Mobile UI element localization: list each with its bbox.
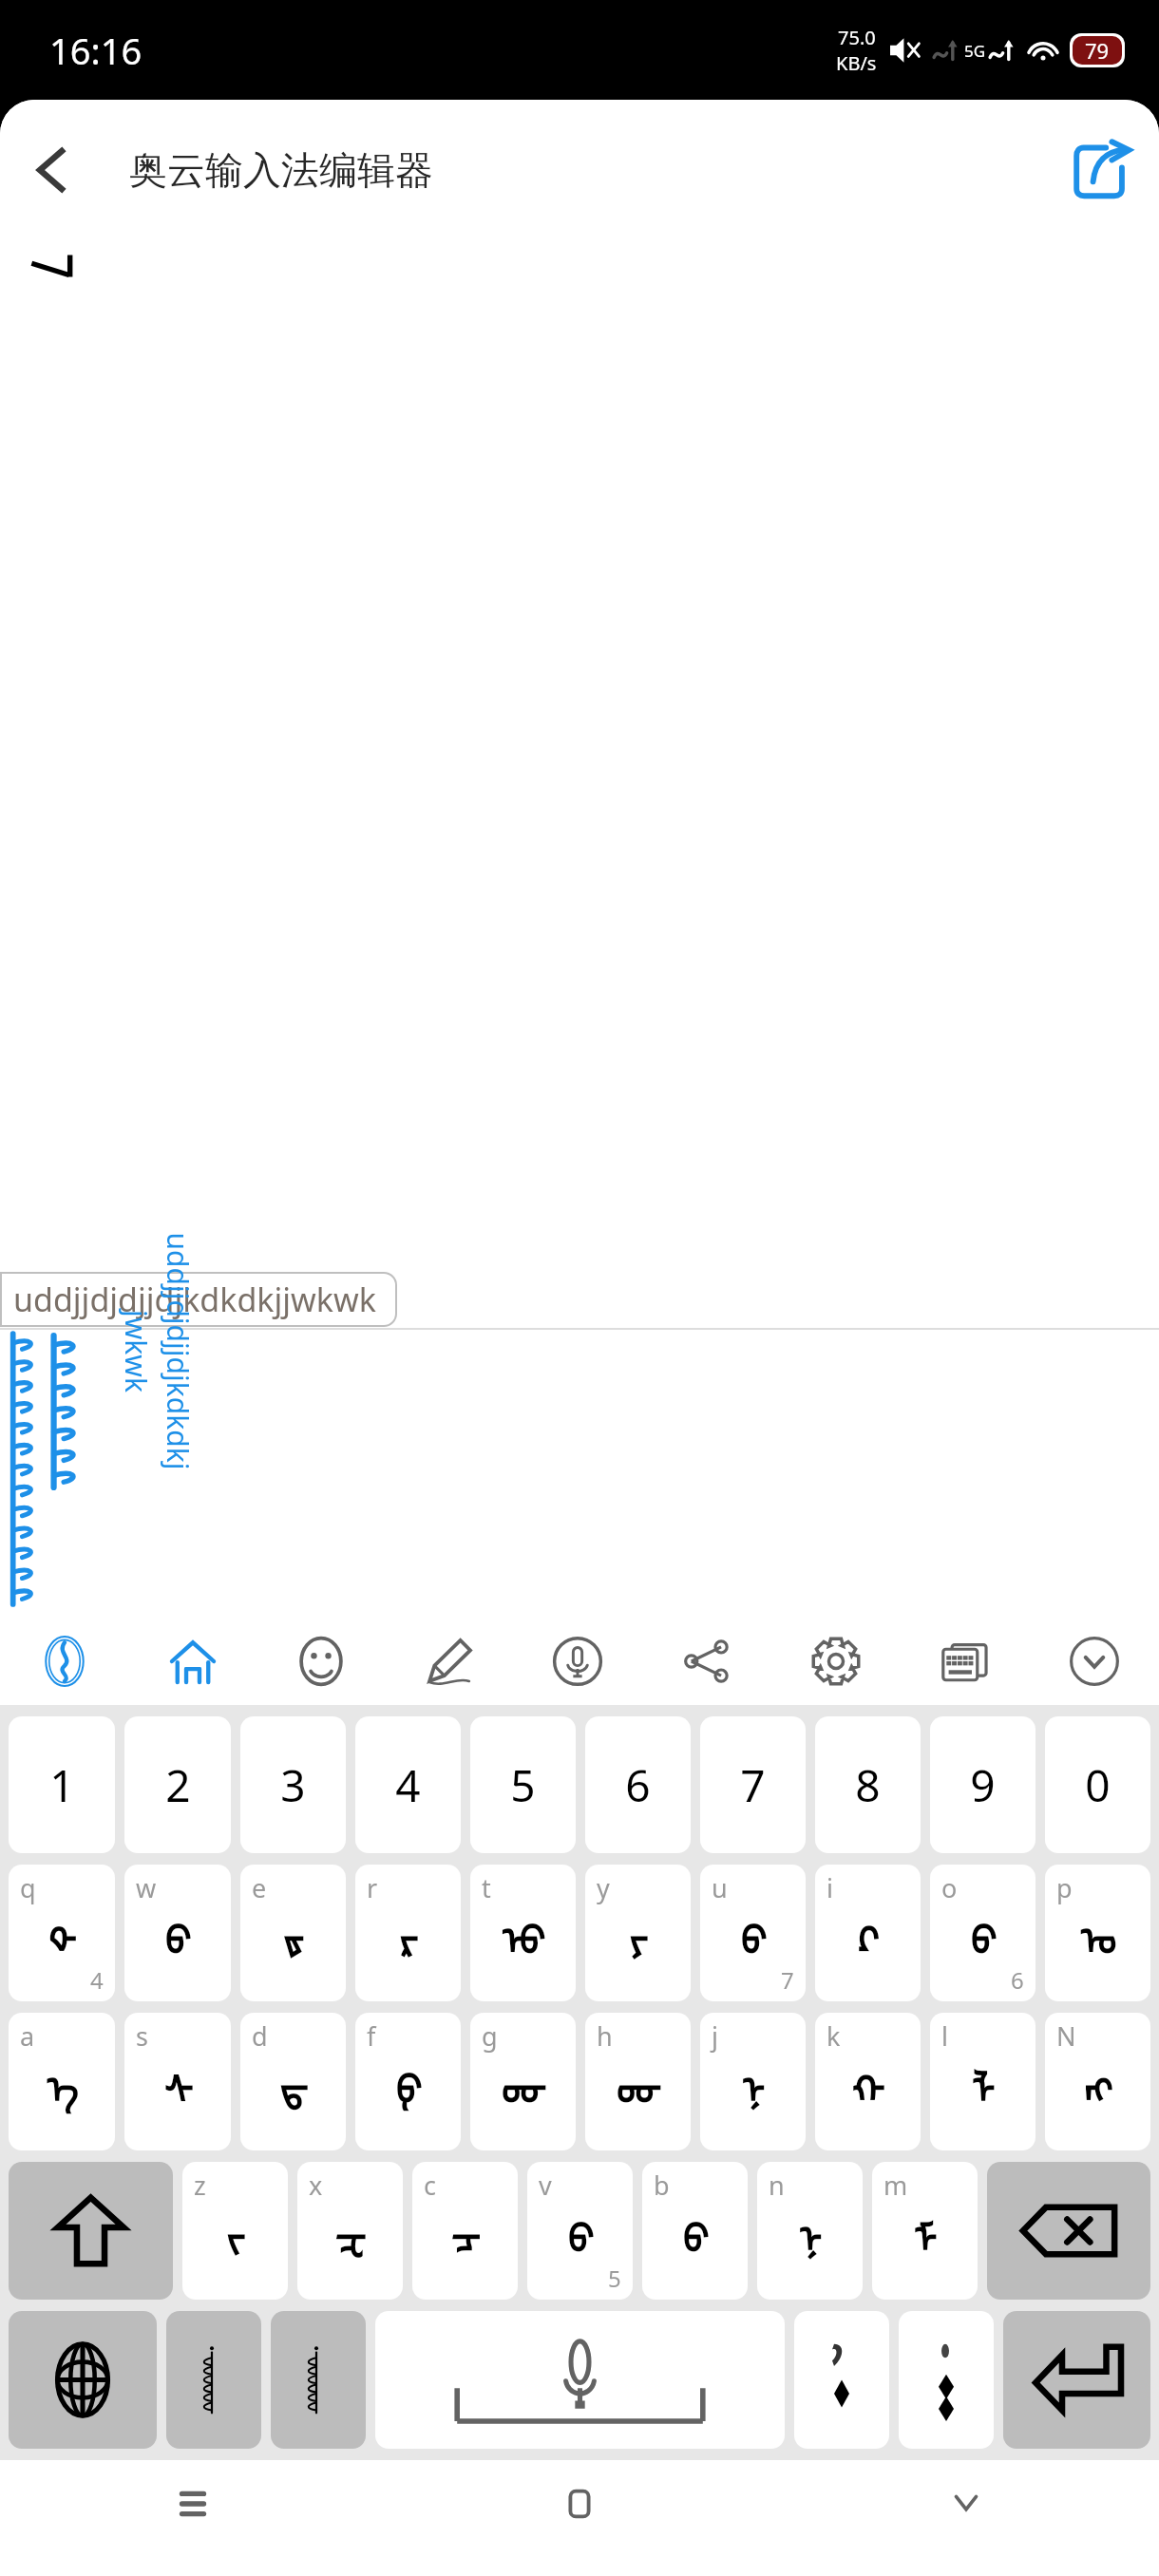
button[interactable]: ᡂ bbox=[470, 2013, 576, 2150]
staticText: w bbox=[136, 1870, 157, 1905]
button[interactable]: ᠳ bbox=[240, 2013, 346, 2150]
staticText: k bbox=[826, 2018, 841, 2054]
staticText: b bbox=[654, 2168, 670, 2203]
button[interactable]: 5 bbox=[470, 1716, 576, 1853]
button[interactable]: Settings bbox=[771, 1618, 901, 1705]
button[interactable]: 9 bbox=[930, 1716, 1035, 1853]
button[interactable]: ᠶ bbox=[585, 1865, 691, 2001]
staticText: 6 bbox=[1011, 1964, 1024, 1996]
staticText: 6 bbox=[625, 1755, 651, 1815]
button[interactable]: Shift bbox=[9, 2162, 173, 2300]
staticText: i bbox=[826, 1870, 833, 1905]
staticText: s bbox=[136, 2018, 148, 2054]
button[interactable]: Switch language bbox=[9, 2311, 157, 2449]
staticText: ᡑ bbox=[282, 1900, 304, 1966]
button[interactable]: Back bbox=[772, 2460, 1159, 2576]
button[interactable]: ᡂ bbox=[585, 2013, 691, 2150]
button[interactable]: Mongolian symbols bbox=[271, 2311, 366, 2449]
staticText: 9 bbox=[970, 1755, 996, 1815]
button[interactable]: Recent apps bbox=[0, 2460, 386, 2576]
staticText: c bbox=[424, 2168, 436, 2203]
button[interactable]: Emoji bbox=[256, 1618, 385, 1705]
staticText: ᠨ bbox=[798, 2198, 822, 2264]
button[interactable]: ᠵ bbox=[182, 2162, 288, 2300]
staticText: 0 bbox=[1085, 1755, 1111, 1815]
staticText: h bbox=[597, 2018, 613, 2054]
button[interactable]: ᡋ bbox=[124, 1865, 231, 2001]
staticText: ᠵ bbox=[226, 2198, 245, 2264]
button[interactable]: ᡋ bbox=[700, 1865, 806, 2001]
staticText: q bbox=[20, 1870, 36, 1905]
staticText: ᠯ bbox=[971, 2049, 995, 2115]
button[interactable]: Space bbox=[375, 2311, 785, 2449]
staticText: ᠨ bbox=[741, 2049, 765, 2115]
button[interactable]: ᠮ bbox=[872, 2162, 978, 2300]
button[interactable]: ᠯ bbox=[930, 2013, 1035, 2150]
staticText: ᡗ bbox=[857, 1900, 879, 1966]
staticText: v bbox=[539, 2168, 552, 2203]
button[interactable]: uddjjdjdjjdjkdkdkj bbox=[59, 1332, 296, 1371]
staticText: 4 bbox=[395, 1755, 421, 1815]
staticText: ᡋ bbox=[740, 1900, 767, 1966]
button[interactable]: Mongolian symbols bbox=[166, 2311, 261, 2449]
button[interactable]: Comma bbox=[794, 2311, 889, 2449]
staticText: a bbox=[20, 2018, 35, 2054]
button[interactable]: Home bbox=[386, 2460, 772, 2576]
staticText: 7 bbox=[740, 1755, 766, 1815]
button[interactable]: ᠨ bbox=[700, 2013, 806, 2150]
button[interactable]: Enter bbox=[1003, 2311, 1150, 2449]
button[interactable]: ᡋ bbox=[527, 2162, 633, 2300]
button[interactable]: Period bbox=[899, 2311, 994, 2449]
button[interactable]: ᡉ bbox=[470, 1865, 576, 2001]
button[interactable]: Switch keyboard bbox=[901, 1618, 1030, 1705]
staticText: 79 bbox=[1085, 36, 1110, 65]
button[interactable]: 1 bbox=[9, 1716, 115, 1853]
button[interactable]: 3 bbox=[240, 1716, 346, 1853]
button[interactable]: Home bbox=[128, 1618, 256, 1705]
button[interactable]: ᡐ bbox=[9, 1865, 115, 2001]
button[interactable]: ᠷ bbox=[355, 1865, 461, 2001]
button[interactable]: 2 bbox=[124, 1716, 231, 1853]
button[interactable]: Voice input bbox=[513, 1618, 642, 1705]
button[interactable]: ᡑ bbox=[240, 1865, 346, 2001]
button[interactable]: ᠤ bbox=[1045, 1865, 1150, 2001]
staticText: x bbox=[309, 2168, 323, 2203]
button[interactable]: ᠡ bbox=[9, 2013, 115, 2150]
staticText: ᠮ bbox=[913, 2198, 937, 2264]
staticText: f bbox=[367, 2018, 376, 2054]
button[interactable]: ᠴ bbox=[412, 2162, 518, 2300]
button[interactable]: Share bbox=[642, 1618, 771, 1705]
button[interactable]: uddjjdjdjjdjkdkdkjjwkwk bbox=[0, 1272, 397, 1327]
button[interactable]: Handwriting bbox=[385, 1618, 513, 1705]
staticText: 4 bbox=[90, 1964, 104, 1996]
staticText: uddjjdjdjjdjkdkdkjjwkwk bbox=[13, 1278, 376, 1321]
staticText: ᠳ bbox=[279, 2049, 308, 2115]
button[interactable]: ᠰ bbox=[124, 2013, 231, 2150]
staticText: ᡋ bbox=[164, 1900, 191, 1966]
button[interactable]: 8 bbox=[815, 1716, 921, 1853]
staticText: ᠹ bbox=[395, 2049, 422, 2115]
button[interactable]: 7 bbox=[700, 1716, 806, 1853]
button[interactable]: ᠽ bbox=[297, 2162, 403, 2300]
button[interactable]: Collapse bbox=[1030, 1618, 1159, 1705]
staticText: ᡉ bbox=[502, 1900, 545, 1966]
button[interactable]: jwkwk bbox=[95, 1332, 178, 1371]
staticText: ᠶ bbox=[629, 1900, 648, 1966]
button[interactable]: Backspace bbox=[987, 2162, 1150, 2300]
button[interactable]: 0 bbox=[1045, 1716, 1150, 1853]
staticText: 7 bbox=[781, 1964, 794, 1996]
button[interactable]: Back bbox=[6, 124, 97, 216]
button[interactable]: 4 bbox=[355, 1716, 461, 1853]
button[interactable]: ᡋ bbox=[930, 1865, 1035, 2001]
staticText: ᠰ bbox=[163, 2049, 193, 2115]
button[interactable]: 6 bbox=[585, 1716, 691, 1853]
button[interactable]: Mongolian input bbox=[0, 1618, 128, 1705]
staticText: 5 bbox=[510, 1755, 536, 1815]
button[interactable]: ᡗ bbox=[815, 1865, 921, 2001]
button[interactable]: ᠨ bbox=[757, 2162, 863, 2300]
button[interactable]: ᠬ bbox=[815, 2013, 921, 2150]
button[interactable]: Share bbox=[1054, 124, 1146, 216]
button[interactable]: ᠩ bbox=[1045, 2013, 1150, 2150]
button[interactable]: ᠹ bbox=[355, 2013, 461, 2150]
button[interactable]: ᠪ bbox=[642, 2162, 748, 2300]
